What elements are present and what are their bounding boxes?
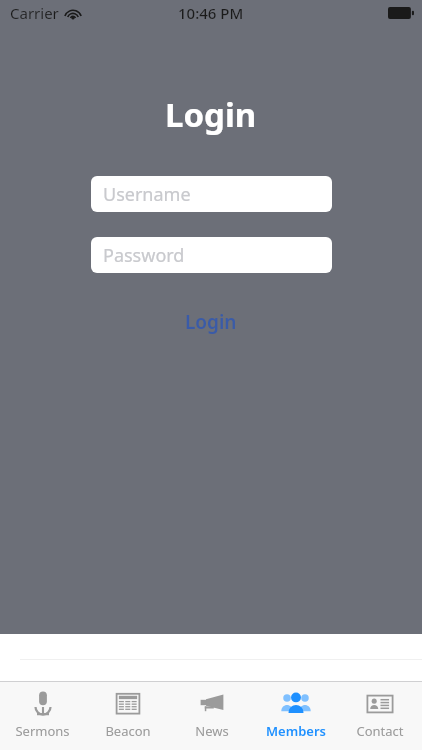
button[interactable]: News	[170, 682, 254, 750]
button[interactable]: Contact	[338, 682, 422, 750]
staticText: Sermons	[15, 722, 70, 740]
staticText: Login	[185, 309, 237, 335]
staticText: News	[195, 722, 229, 740]
staticText: Contact	[356, 722, 404, 740]
button[interactable]: Username	[91, 176, 332, 212]
staticText: Beacon	[105, 722, 151, 740]
button[interactable]: Login	[167, 303, 255, 341]
staticText: Login	[165, 92, 257, 137]
button[interactable]: Beacon	[85, 682, 170, 750]
staticText: Carrier	[10, 3, 59, 23]
button[interactable]: Password	[91, 237, 332, 273]
staticText: Username	[103, 182, 191, 207]
button[interactable]: Sermons	[0, 682, 85, 750]
button[interactable]: Members	[254, 682, 338, 750]
staticText: 10:46 PM	[178, 3, 244, 23]
staticText: Password	[103, 243, 185, 268]
staticText: Members	[266, 722, 326, 740]
